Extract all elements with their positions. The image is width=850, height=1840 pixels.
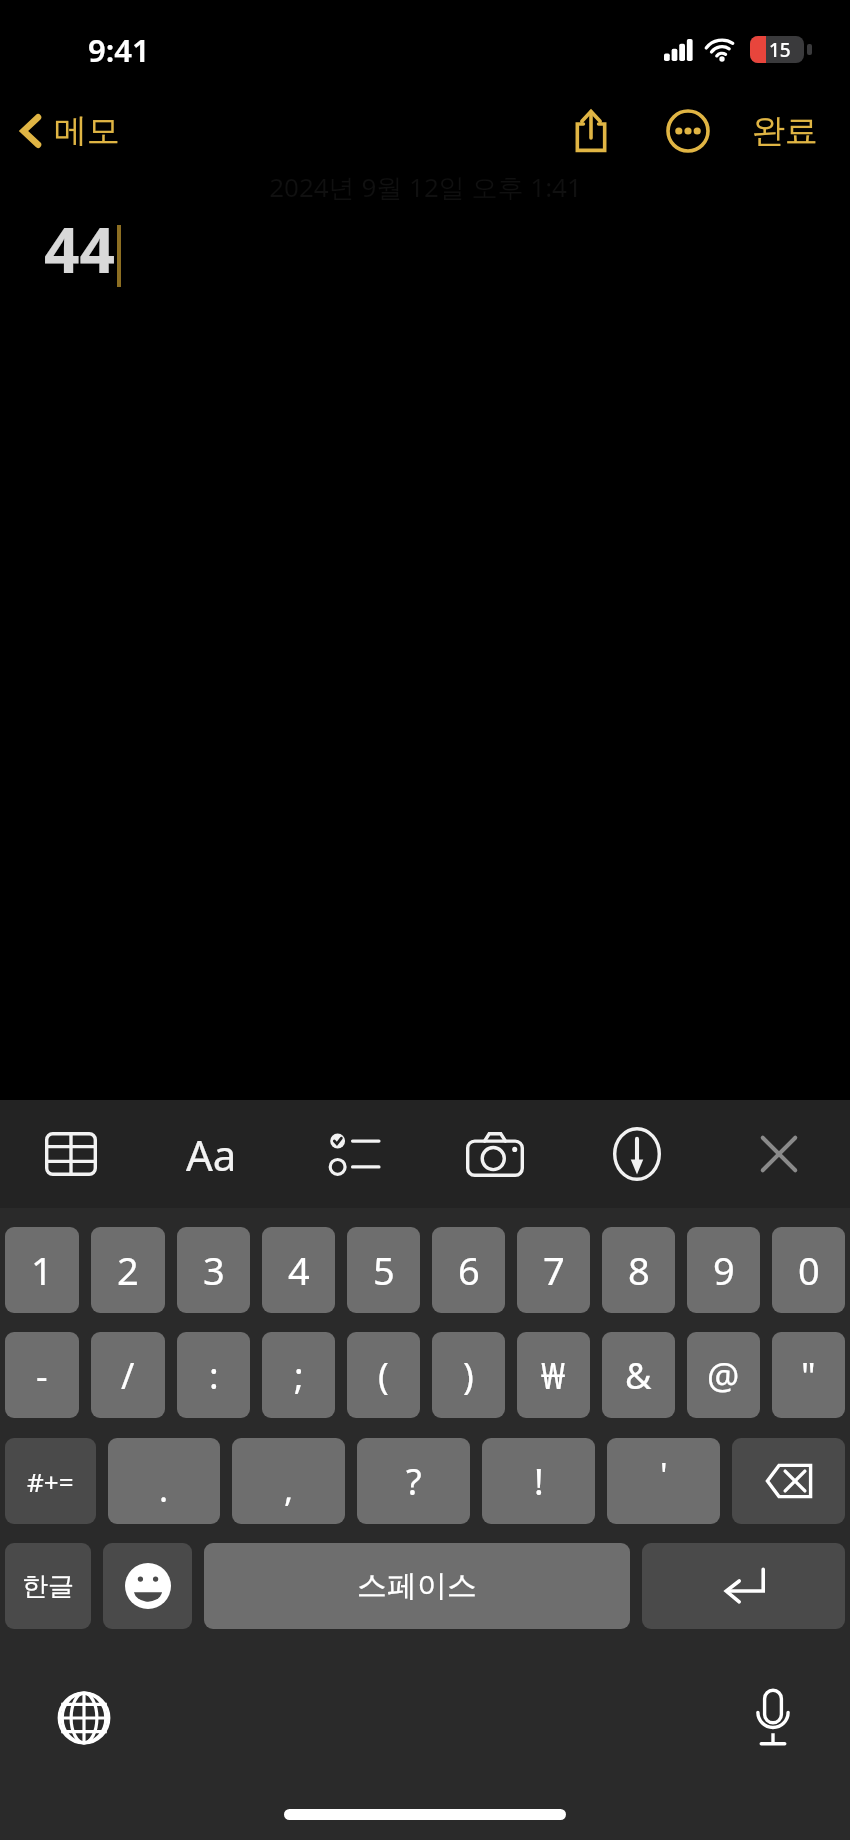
staticText: / xyxy=(121,1351,135,1400)
staticText: #+= xyxy=(27,1464,74,1499)
button[interactable]: ; xyxy=(262,1332,335,1418)
staticText: 8 xyxy=(628,1244,650,1296)
button[interactable]: Share xyxy=(562,99,620,163)
staticText: . xyxy=(159,1466,169,1512)
button[interactable]: 한글 xyxy=(5,1543,91,1629)
staticText: @ xyxy=(707,1351,740,1400)
staticText: " xyxy=(801,1351,816,1400)
staticText: ; xyxy=(294,1351,304,1400)
staticText: 2 xyxy=(117,1244,139,1296)
button[interactable]: 1 xyxy=(5,1227,79,1313)
button[interactable]: , xyxy=(232,1438,345,1524)
staticText: 완료 xyxy=(752,110,818,152)
button[interactable]: @ xyxy=(687,1332,760,1418)
button[interactable]: " xyxy=(772,1332,845,1418)
staticText: 1 xyxy=(31,1244,53,1296)
button[interactable]: 9 xyxy=(687,1227,760,1313)
button[interactable]: 6 xyxy=(432,1227,505,1313)
staticText: 0 xyxy=(798,1244,820,1296)
staticText: 7 xyxy=(543,1244,565,1296)
staticText: Aa xyxy=(186,1126,237,1183)
button[interactable]: ? xyxy=(357,1438,470,1524)
button[interactable]: & xyxy=(602,1332,675,1418)
staticText: 한글 xyxy=(22,1570,74,1603)
button[interactable]: : xyxy=(177,1332,250,1418)
button[interactable]: . xyxy=(108,1438,220,1524)
button[interactable]: Change keyboard xyxy=(48,1682,120,1754)
button[interactable]: 3 xyxy=(177,1227,250,1313)
staticText: 9:41 xyxy=(88,29,150,71)
button[interactable]: Format xyxy=(141,1100,282,1208)
button[interactable]: Checklist xyxy=(282,1100,424,1208)
button[interactable]: Return xyxy=(642,1543,845,1629)
staticText: 3 xyxy=(203,1244,225,1296)
button[interactable]: Backspace xyxy=(732,1438,845,1524)
button[interactable]: ! xyxy=(482,1438,595,1524)
staticText: ) xyxy=(463,1351,474,1400)
button[interactable]: 2 xyxy=(91,1227,165,1313)
staticText: 9 xyxy=(713,1244,735,1296)
button[interactable]: ( xyxy=(347,1332,420,1418)
button[interactable]: 메모 xyxy=(14,104,126,158)
staticText: - xyxy=(36,1351,48,1400)
button[interactable]: Table xyxy=(0,1100,141,1208)
staticText: : xyxy=(209,1351,219,1400)
staticText: ' xyxy=(660,1452,668,1498)
staticText: & xyxy=(625,1351,652,1400)
staticText: ! xyxy=(534,1457,544,1506)
button[interactable]: Close xyxy=(708,1100,850,1208)
staticText: , xyxy=(284,1466,294,1512)
staticText: 6 xyxy=(458,1244,480,1296)
staticText: ( xyxy=(378,1351,389,1400)
button[interactable]: 0 xyxy=(772,1227,845,1313)
staticText: ₩ xyxy=(541,1351,566,1400)
staticText: ? xyxy=(406,1457,422,1506)
button[interactable]: ) xyxy=(432,1332,505,1418)
button[interactable]: #+= xyxy=(5,1438,96,1524)
staticText: 5 xyxy=(373,1244,395,1296)
staticText: 2024년 9월 12일 오후 1:41 xyxy=(269,169,582,205)
staticText: 15 xyxy=(769,37,791,63)
button[interactable]: ₩ xyxy=(517,1332,590,1418)
button[interactable]: Dictate xyxy=(744,1680,802,1754)
button[interactable]: Camera xyxy=(424,1100,566,1208)
button[interactable]: - xyxy=(5,1332,79,1418)
staticText: 메모 xyxy=(54,110,120,152)
staticText: 44 xyxy=(44,207,115,291)
button[interactable]: / xyxy=(91,1332,165,1418)
button[interactable]: More options xyxy=(656,99,720,163)
button[interactable]: 8 xyxy=(602,1227,675,1313)
button[interactable]: Emoji xyxy=(103,1543,192,1629)
button[interactable]: 4 xyxy=(262,1227,335,1313)
button[interactable]: 5 xyxy=(347,1227,420,1313)
button[interactable]: 스페이스 xyxy=(204,1543,630,1629)
staticText: 4 xyxy=(288,1244,310,1296)
button[interactable]: 완료 xyxy=(746,102,824,160)
button[interactable]: Markup xyxy=(566,1100,708,1208)
button[interactable]: 7 xyxy=(517,1227,590,1313)
staticText: 스페이스 xyxy=(357,1567,477,1605)
button[interactable]: ' xyxy=(607,1438,720,1524)
